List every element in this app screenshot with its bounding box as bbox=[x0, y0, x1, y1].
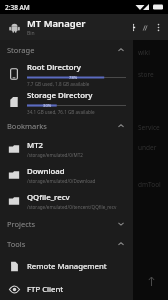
staticText: /storage/emulated/0/Download bbox=[27, 178, 96, 184]
staticText: Storage bbox=[7, 45, 117, 55]
staticText: Service bbox=[138, 123, 160, 132]
staticText: under bbox=[138, 143, 157, 152]
button[interactable]: QQfile_recv bbox=[0, 188, 133, 214]
button[interactable]: Storage bbox=[0, 40, 133, 60]
staticText: Root Directory bbox=[27, 62, 81, 73]
button[interactable]: Root Directory bbox=[0, 60, 133, 88]
button[interactable]: Open navigation bbox=[6, 19, 22, 35]
button[interactable]: FTP Client bbox=[0, 278, 133, 300]
staticText: 30% bbox=[43, 103, 52, 108]
staticText: FTP Client bbox=[27, 284, 64, 295]
staticText: MT2 bbox=[27, 140, 43, 151]
staticText: 2:38 AM bbox=[5, 3, 30, 12]
staticText: dmTool bbox=[138, 180, 161, 189]
staticText: Bookmarks bbox=[7, 121, 117, 131]
button[interactable]: Tools bbox=[0, 234, 133, 254]
staticText: Projects bbox=[7, 219, 117, 229]
button[interactable]: More options bbox=[151, 20, 165, 34]
button[interactable]: Projects bbox=[0, 214, 133, 234]
staticText: Bin bbox=[27, 30, 35, 37]
button[interactable]: Download bbox=[0, 162, 133, 188]
staticText: /storage/emulated/0/tencent/QQfile_recv bbox=[27, 204, 117, 210]
button[interactable]: Bookmarks bbox=[0, 116, 133, 136]
staticText: /storage/emulated/0/MT2 bbox=[27, 152, 83, 158]
button[interactable]: MT2 bbox=[0, 136, 133, 162]
staticText: 7.7 GB used, 1.8 GB available bbox=[27, 81, 90, 87]
button[interactable]: Storage Directory bbox=[0, 88, 133, 116]
staticText: MT Manager bbox=[27, 17, 86, 30]
button[interactable]: Code bbox=[138, 21, 151, 34]
button[interactable]: Settings bbox=[122, 19, 138, 35]
staticText: 78% bbox=[69, 75, 78, 80]
staticText: Download bbox=[27, 166, 65, 177]
staticText: store bbox=[138, 70, 154, 79]
staticText: QQfile_recv bbox=[27, 192, 70, 203]
staticText: wiki bbox=[138, 48, 150, 57]
staticText: Tools bbox=[7, 239, 117, 249]
button[interactable]: Remote Management bbox=[0, 254, 133, 278]
staticText: Remote Management bbox=[27, 261, 107, 272]
staticText: 34.1 GB used, 76.1 GB available bbox=[27, 109, 95, 115]
staticText: Storage Directory bbox=[27, 90, 93, 101]
